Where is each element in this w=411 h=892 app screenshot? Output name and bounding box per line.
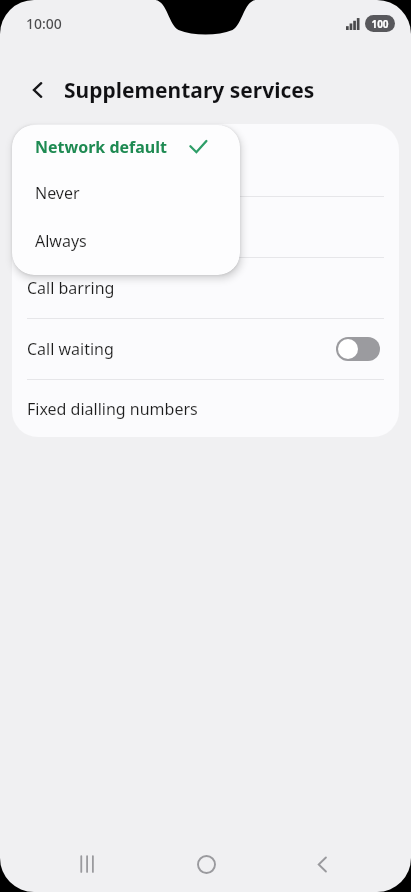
button[interactable]: Back	[294, 836, 350, 892]
button[interactable]: Network default	[12, 125, 240, 169]
button[interactable]: Home	[178, 836, 234, 892]
staticText: Call barring	[27, 277, 115, 299]
staticText: Never	[35, 182, 80, 204]
button[interactable]: Recent apps	[61, 836, 117, 892]
button[interactable]: Call waiting	[12, 319, 399, 379]
button[interactable]: Call barring	[12, 258, 399, 318]
button[interactable]: Never	[12, 169, 240, 217]
button[interactable]	[12, 124, 399, 196]
button[interactable]	[12, 197, 399, 257]
button[interactable]: Back	[16, 68, 60, 112]
staticText: Network default	[35, 136, 167, 158]
staticText: 100	[371, 17, 389, 31]
button[interactable]: Fixed dialling numbers	[12, 380, 399, 437]
staticText: Call waiting	[27, 338, 114, 360]
staticText: Always	[35, 230, 87, 252]
staticText: 10:00	[26, 14, 62, 33]
button[interactable]: Call waiting toggle	[336, 337, 380, 361]
button[interactable]: Always	[12, 217, 240, 265]
staticText: Fixed dialling numbers	[27, 398, 198, 420]
staticText: Supplementary services	[64, 76, 315, 105]
